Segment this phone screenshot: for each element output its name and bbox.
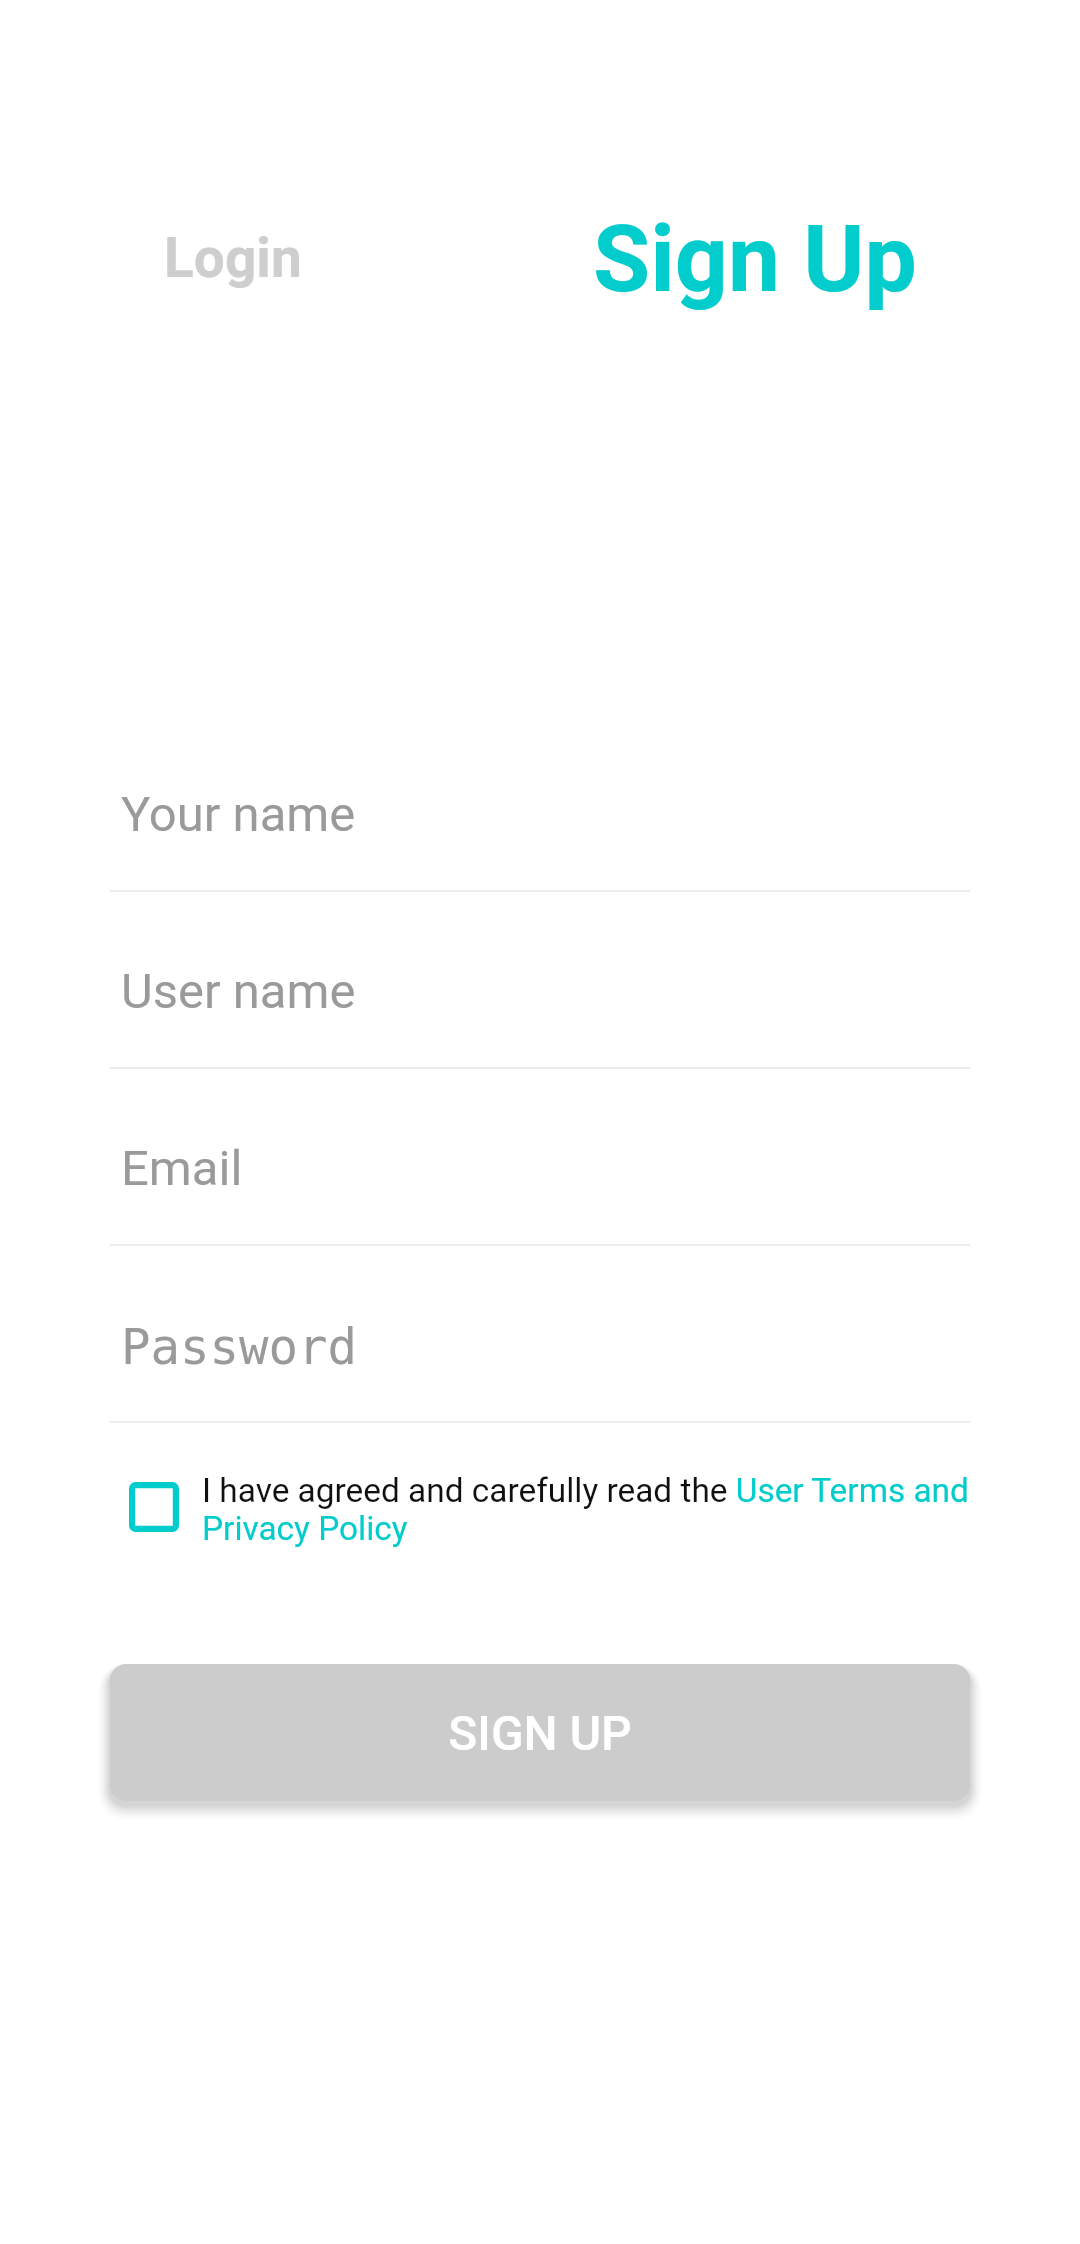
staticText: Password	[121, 1319, 358, 1376]
staticText: SIGN UP	[448, 1705, 632, 1761]
button[interactable]: User name	[110, 890, 970, 1067]
button[interactable]: Password	[110, 1244, 970, 1421]
staticText: Email	[121, 1140, 243, 1197]
button[interactable]: Sign Up	[540, 170, 970, 330]
button[interactable]: SIGN UP	[110, 1664, 970, 1801]
staticText: Sign Up	[593, 205, 917, 314]
button[interactable]: I agree to the User Terms and Privacy Po…	[110, 1455, 970, 1575]
button[interactable]: Login	[110, 180, 440, 320]
button[interactable]: Accept terms checkbox	[129, 1482, 179, 1532]
staticText: User name	[121, 963, 356, 1020]
staticText: I have agreed and carefully read the Use…	[202, 1471, 972, 1548]
button[interactable]: Your name	[110, 713, 970, 890]
staticText: Your name	[121, 786, 356, 843]
button[interactable]: Email	[110, 1067, 970, 1244]
staticText: Login	[164, 226, 302, 290]
